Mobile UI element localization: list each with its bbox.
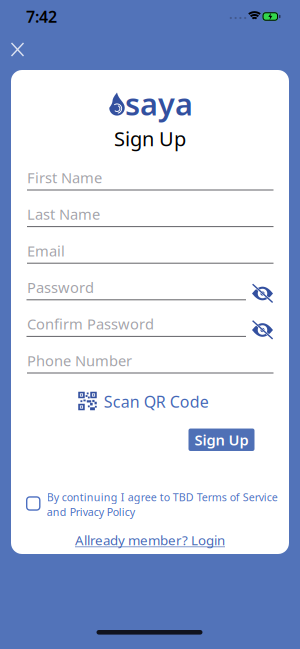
staticText: 7:42 xyxy=(26,6,57,27)
staticText: Email xyxy=(27,241,65,260)
button[interactable]: Agree to terms xyxy=(26,496,40,511)
staticText: Last Name xyxy=(27,204,100,224)
staticText: Sign Up xyxy=(114,125,186,152)
button[interactable]: Show password xyxy=(247,281,277,305)
button[interactable]: Allready member? Login xyxy=(71,527,229,553)
staticText: Phone Number xyxy=(27,351,132,370)
button[interactable]: Scan QR Code xyxy=(78,391,209,412)
staticText: and Privacy Policy xyxy=(47,505,135,519)
button[interactable]: Show confirm password xyxy=(247,318,277,342)
staticText: Confirm Password xyxy=(27,314,154,334)
staticText: Sign Up xyxy=(194,430,248,449)
button[interactable]: Sign Up xyxy=(188,428,254,451)
button[interactable]: By continuing I agree to TBD Terms of Se… xyxy=(47,490,262,519)
staticText: Allready member? Login xyxy=(75,531,225,549)
staticText: Password xyxy=(27,278,94,297)
button[interactable]: Close xyxy=(5,37,29,62)
staticText: saya xyxy=(125,83,193,124)
staticText: Scan QR Code xyxy=(104,391,209,412)
staticText: First Name xyxy=(27,168,102,187)
staticText: By continuing I agree to TBD Terms of Se… xyxy=(47,490,278,504)
